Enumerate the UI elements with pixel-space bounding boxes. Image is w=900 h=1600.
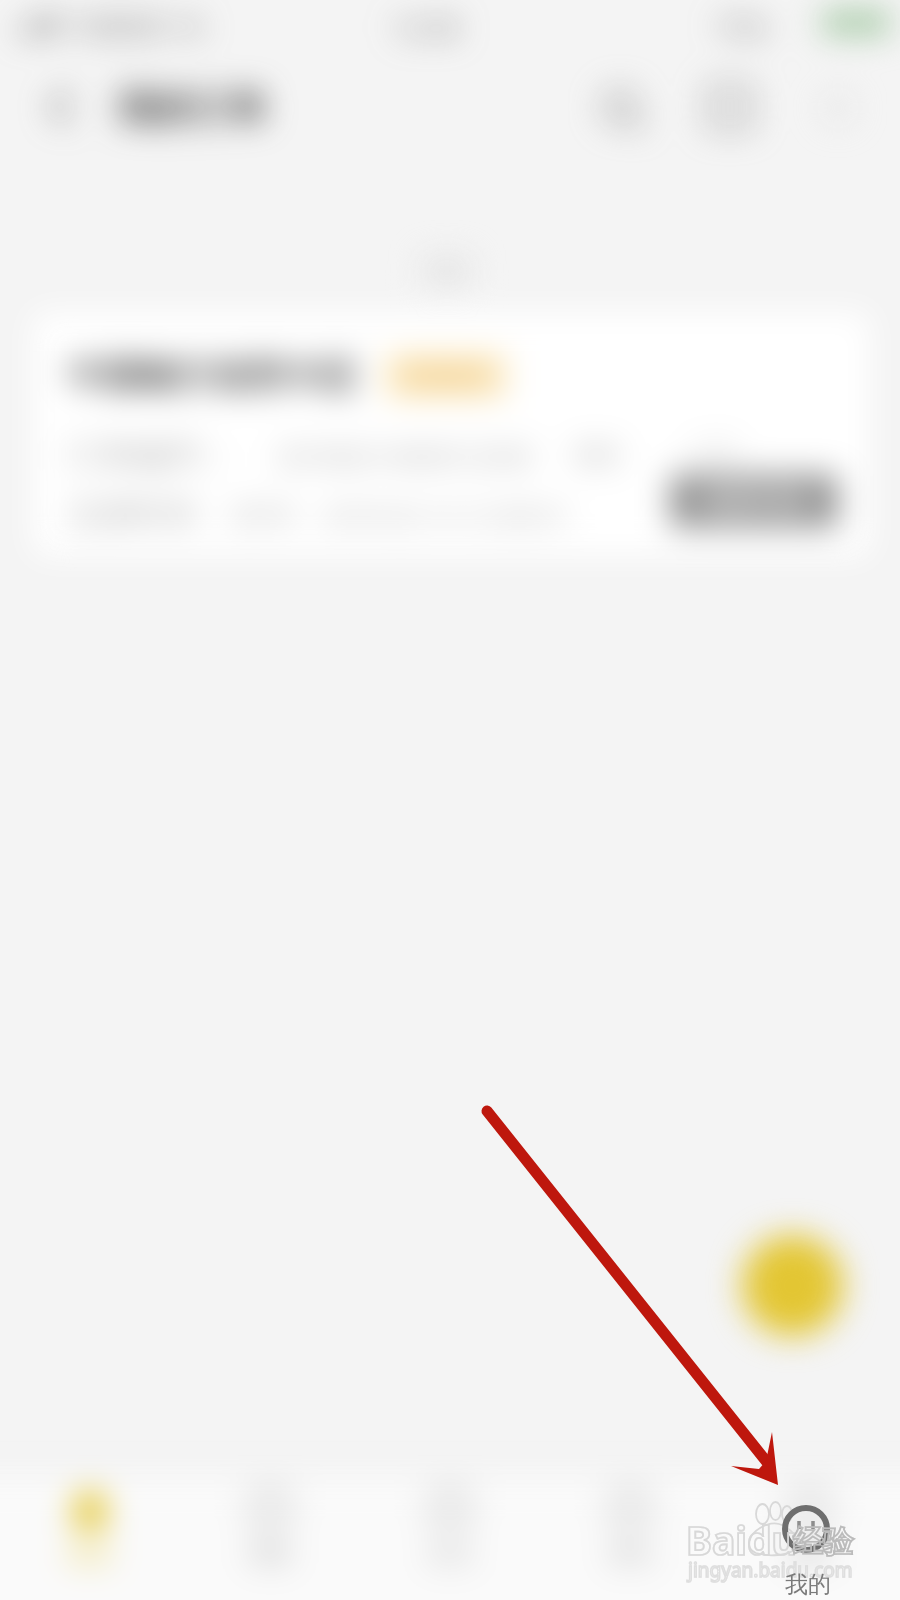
- button[interactable]: 生活: [360, 1477, 540, 1600]
- button[interactable]: 首页: [0, 1477, 180, 1600]
- staticText: 我的: [785, 1570, 831, 1599]
- button[interactable]: Back: [16, 62, 106, 152]
- button[interactable]: 理财: [180, 1477, 360, 1600]
- staticText: 交易成功: [402, 362, 490, 390]
- staticText: 金额：: [688, 436, 760, 466]
- staticText: 我的订单: [118, 85, 266, 132]
- button[interactable]: Scan: [742, 1235, 843, 1336]
- staticText: 查看详情: [702, 485, 806, 518]
- button[interactable]: 查看详情: [670, 474, 838, 528]
- staticText: 订单编号：: [67, 434, 237, 477]
- staticText: 中国联通 4G: [70, 10, 204, 41]
- staticText: 我的: [788, 1541, 832, 1569]
- button[interactable]: 中国银行信用卡还: [33, 312, 870, 556]
- button[interactable]: 资讯: [540, 1477, 720, 1600]
- button[interactable]: Search: [575, 62, 665, 152]
- button[interactable]: 我的: [720, 1477, 900, 1600]
- staticText: 首页: [68, 1541, 112, 1569]
- button[interactable]: Orders: [685, 62, 775, 152]
- staticText: 中国银行信用卡还: [68, 353, 356, 398]
- staticText: 交易时间: [69, 494, 197, 534]
